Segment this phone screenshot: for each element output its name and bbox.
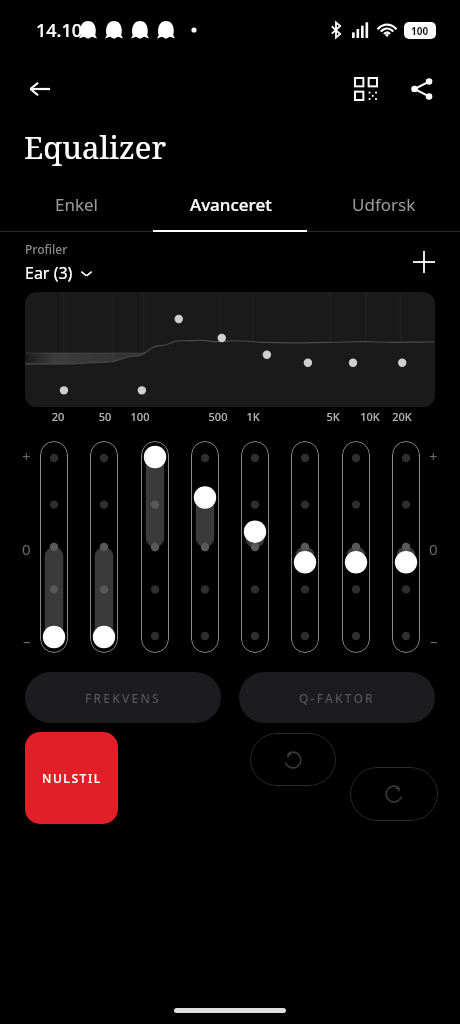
staticText: 100 xyxy=(128,409,152,424)
staticText: – xyxy=(430,631,438,651)
button[interactable]: Undo xyxy=(250,733,336,786)
button[interactable]: Redo xyxy=(350,767,438,821)
button[interactable]: Add profile xyxy=(402,240,446,284)
button[interactable]: NULSTIL xyxy=(25,732,118,824)
button[interactable]: Ear (3) xyxy=(25,262,93,284)
staticText: Enkel xyxy=(55,193,99,216)
button[interactable] xyxy=(25,292,435,407)
button[interactable]: Band gain xyxy=(90,441,118,653)
button[interactable]: Band gain xyxy=(291,441,319,653)
button[interactable]: Band gain xyxy=(342,441,370,653)
staticText: 100 xyxy=(411,24,429,38)
staticText: 0 xyxy=(22,539,31,559)
button[interactable]: Avanceret xyxy=(154,176,307,232)
button[interactable]: Scan code xyxy=(344,67,388,111)
staticText: – xyxy=(23,631,31,651)
staticText: NULSTIL xyxy=(42,770,102,786)
staticText: 5K xyxy=(321,409,345,424)
staticText: 10K xyxy=(358,409,382,424)
button[interactable]: Udforsk xyxy=(307,176,460,232)
button[interactable]: Q-FAKTOR xyxy=(239,672,435,723)
button[interactable]: Enkel xyxy=(0,176,154,232)
staticText: 20K xyxy=(390,409,414,424)
button[interactable]: Back xyxy=(16,65,64,113)
staticText: Q-FAKTOR xyxy=(299,690,375,706)
button[interactable]: Band gain xyxy=(141,441,169,653)
staticText: 20 xyxy=(46,409,70,424)
staticText: Profiler xyxy=(25,241,68,257)
staticText: Udforsk xyxy=(352,193,416,216)
button[interactable]: Band gain xyxy=(191,441,219,653)
staticText: + xyxy=(22,446,31,466)
button[interactable]: Band gain xyxy=(241,441,269,653)
staticText: 1K xyxy=(241,409,265,424)
staticText: Ear (3) xyxy=(25,262,73,284)
staticText: 500 xyxy=(206,409,230,424)
staticText: FREKVENS xyxy=(85,690,161,706)
staticText: + xyxy=(429,446,438,466)
staticText: Avanceret xyxy=(190,193,272,216)
button[interactable]: FREKVENS xyxy=(25,672,221,723)
button[interactable]: Band gain xyxy=(40,441,68,653)
staticText: 0 xyxy=(429,539,438,559)
staticText: 14.10 xyxy=(36,18,83,43)
staticText: Equalizer xyxy=(24,126,167,168)
staticText: 50 xyxy=(93,409,117,424)
button[interactable]: Band gain xyxy=(392,441,420,653)
button[interactable]: Share xyxy=(400,67,444,111)
